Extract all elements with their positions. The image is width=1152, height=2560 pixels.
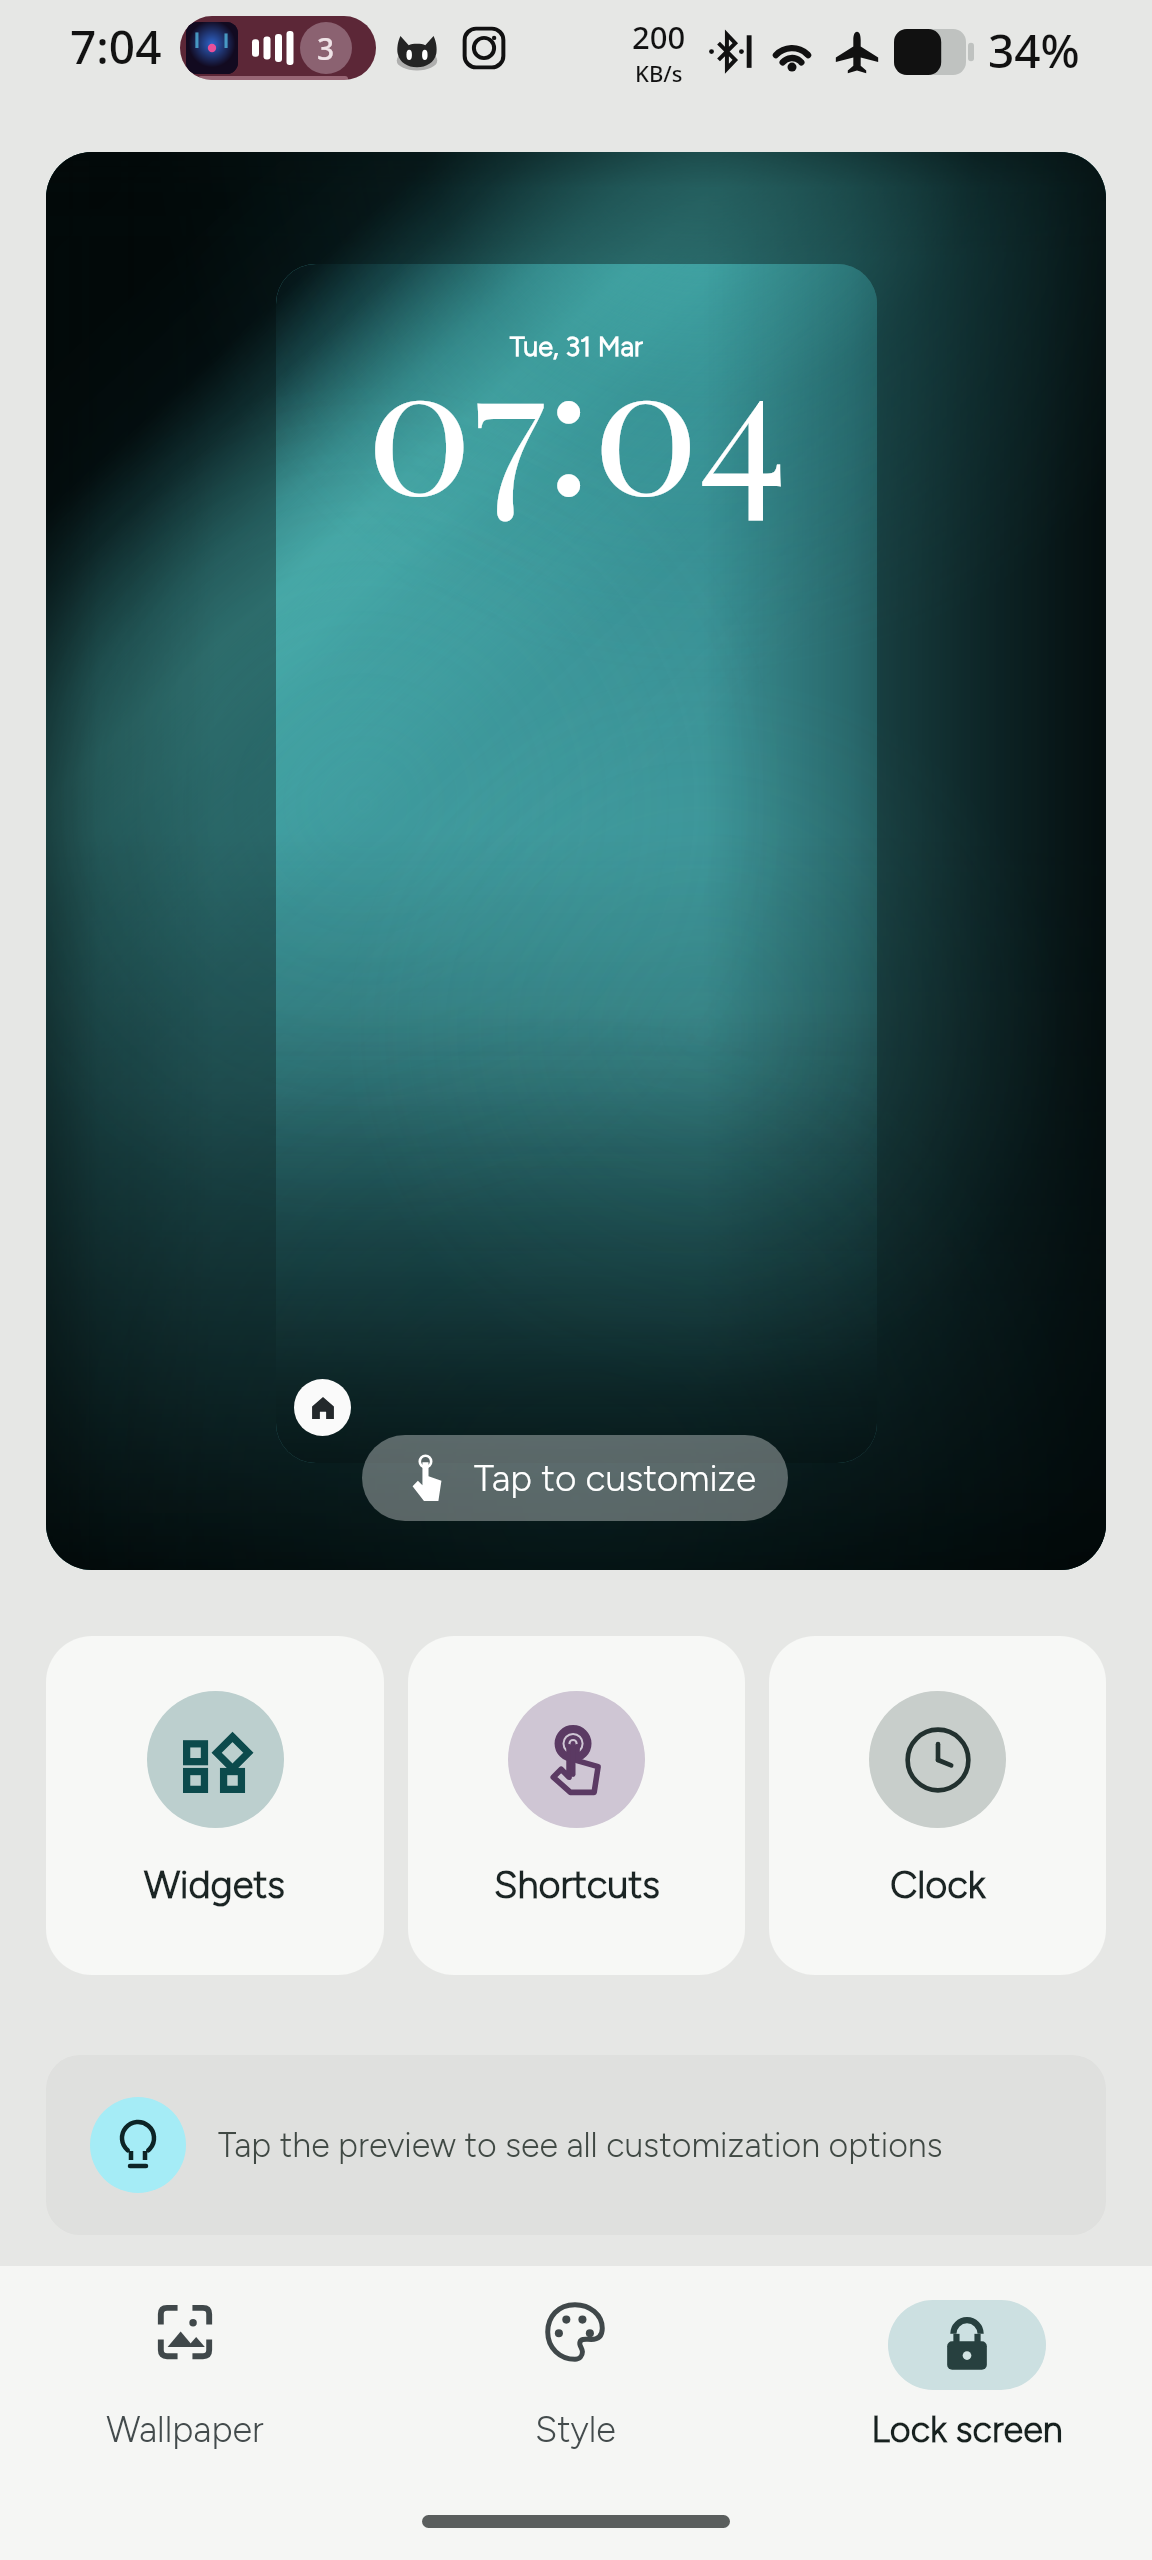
staticText: 07:04 (366, 302, 788, 539)
button[interactable]: Home (294, 1379, 351, 1436)
button[interactable]: 3 (180, 16, 376, 80)
staticText: Tap the preview to see all customization… (218, 2125, 943, 2166)
staticText: Shortcuts (494, 1862, 660, 1908)
button[interactable]: Lock screen (768, 2266, 1152, 2451)
staticText: KB/s (635, 58, 683, 88)
staticText: Lock screen (871, 2408, 1063, 2451)
button[interactable]: Shortcuts (408, 1636, 745, 1975)
staticText: Tap to customize (474, 1456, 757, 1500)
button[interactable]: Tap to customize (362, 1435, 788, 1521)
staticText: 200 (632, 16, 686, 58)
staticText: 34% (988, 19, 1080, 82)
staticText: 7:04 (70, 15, 162, 78)
staticText: Style (535, 2408, 616, 2451)
button[interactable]: Wallpaper (0, 2266, 384, 2451)
staticText: Widgets (144, 1862, 286, 1908)
staticText: 3 (317, 28, 335, 69)
button[interactable]: Tap the preview to see all customization… (46, 2055, 1106, 2235)
staticText: Clock (890, 1862, 986, 1908)
staticText: Wallpaper (106, 2408, 264, 2451)
button[interactable]: Tue, 31 Mar (46, 152, 1106, 1570)
button[interactable]: Style (384, 2266, 768, 2451)
button[interactable]: Widgets (46, 1636, 384, 1975)
button[interactable]: Clock (769, 1636, 1106, 1975)
staticText: Tue, 31 Mar (510, 330, 643, 362)
